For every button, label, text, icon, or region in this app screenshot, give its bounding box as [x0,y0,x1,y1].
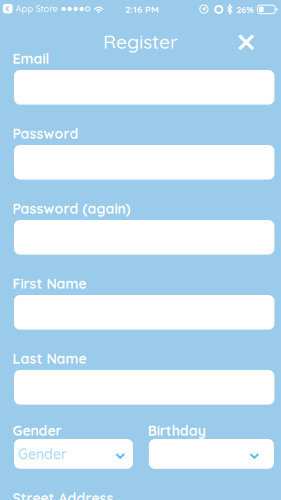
staticText: Password [12,125,78,142]
staticText: Email [12,50,49,67]
staticText: Birthday [148,422,206,439]
staticText: Street Address [12,489,113,500]
staticText: Gender [12,422,61,439]
button[interactable]: Back to App Store [3,3,58,14]
button[interactable]: Birthday [149,439,274,469]
staticText: Register [103,29,178,54]
staticText: First Name [12,275,86,292]
staticText: Password (again) [12,200,130,217]
staticText: 26% [236,3,254,15]
staticText: Last Name [12,350,86,367]
button[interactable]: First Name [14,295,274,330]
button[interactable]: Gender [14,439,133,469]
button[interactable]: Password [14,145,274,180]
staticText: 2:16 PM [125,3,159,15]
button[interactable]: Close [230,26,263,59]
button[interactable]: Password (again) [14,220,274,255]
staticText: Gender [18,445,67,463]
staticText: App Store [16,3,58,14]
button[interactable]: Last Name [14,370,274,405]
button[interactable]: Email [14,70,274,105]
